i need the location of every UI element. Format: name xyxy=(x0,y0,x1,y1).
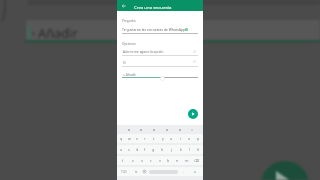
staticText: i xyxy=(180,136,181,141)
button[interactable]: ↵ xyxy=(187,167,203,176)
button[interactable]: o xyxy=(185,134,194,143)
staticText: j xyxy=(171,147,172,152)
button[interactable]: q xyxy=(117,134,125,143)
button[interactable]: Emoji xyxy=(141,167,147,176)
staticText: Sí xyxy=(123,61,126,65)
button[interactable]: h xyxy=(158,145,167,154)
button[interactable]: Space xyxy=(147,167,179,176)
staticText: g xyxy=(152,147,155,152)
button[interactable]: d xyxy=(133,145,141,154)
staticText: d xyxy=(136,147,139,152)
staticText: ñ xyxy=(197,147,200,152)
button[interactable]: Crea una encuesta xyxy=(134,4,172,10)
staticText: ⌫ xyxy=(194,159,200,163)
staticText: c xyxy=(150,158,152,163)
staticText: k xyxy=(180,147,182,152)
staticText: ⇧ xyxy=(121,159,125,163)
button[interactable]: ⇧ xyxy=(117,156,128,165)
button[interactable]: ⇅ xyxy=(131,167,141,176)
button[interactable]: g xyxy=(149,145,158,154)
staticText: h xyxy=(161,147,164,152)
staticText: o xyxy=(188,136,191,141)
button[interactable]: l xyxy=(185,145,194,154)
button[interactable]: Keyboard tool xyxy=(152,128,155,131)
button[interactable]: e xyxy=(133,134,141,143)
button[interactable]: c xyxy=(146,156,155,165)
staticText: Aún no me agarro la opción xyxy=(123,50,164,54)
button[interactable]: Keyboard tool xyxy=(165,128,168,131)
button[interactable]: p xyxy=(194,134,203,143)
button[interactable]: s xyxy=(125,145,133,154)
staticText: z xyxy=(132,158,134,163)
staticText: w xyxy=(128,136,131,141)
staticText: Opciones xyxy=(122,42,136,46)
staticText: . xyxy=(183,169,184,174)
staticText: u xyxy=(170,136,173,141)
button[interactable]: n xyxy=(173,156,182,165)
button[interactable]: Send poll xyxy=(188,109,198,119)
staticText: + Añadir xyxy=(123,72,136,76)
staticText: ↵ xyxy=(194,170,197,174)
staticText: e xyxy=(136,136,139,141)
button[interactable]: ?123 xyxy=(117,167,131,176)
button[interactable]: Keyboard tool xyxy=(139,128,142,131)
button[interactable]: Te gustaron las encuestas de WhatsApp? xyxy=(122,27,187,32)
staticText: a xyxy=(120,147,123,152)
button[interactable]: Keyboard tool xyxy=(127,128,130,131)
button[interactable]: v xyxy=(155,156,164,165)
button[interactable]: u xyxy=(167,134,176,143)
staticText: s xyxy=(128,147,130,152)
button[interactable]: More options xyxy=(190,128,193,131)
button[interactable]: i xyxy=(176,134,185,143)
staticText: v xyxy=(159,158,161,163)
button[interactable]: b xyxy=(164,156,173,165)
button[interactable]: t xyxy=(149,134,158,143)
button[interactable]: Sí xyxy=(123,61,126,65)
button[interactable]: z xyxy=(128,156,137,165)
staticText: x xyxy=(141,158,143,163)
button[interactable]: ⌫ xyxy=(191,156,203,165)
staticText: Pregunta xyxy=(122,19,136,23)
staticText: Añadir xyxy=(38,24,78,41)
button[interactable]: Aún no me agarro la opción xyxy=(123,50,164,54)
staticText: p xyxy=(197,136,200,141)
staticText: n xyxy=(176,158,179,163)
button[interactable]: Keyboard tool xyxy=(178,128,181,131)
staticText: r xyxy=(144,136,146,141)
staticText: t xyxy=(153,136,155,141)
staticText: ?123 xyxy=(121,170,127,174)
button[interactable]: Back xyxy=(120,2,127,9)
button[interactable]: y xyxy=(158,134,167,143)
button[interactable]: m xyxy=(182,156,191,165)
button[interactable]: w xyxy=(125,134,133,143)
staticText: b xyxy=(167,158,170,163)
staticText: Te gustaron las encuestas de WhatsApp? xyxy=(122,27,187,32)
staticText: m xyxy=(185,158,189,163)
staticText: y xyxy=(162,136,164,141)
button[interactable]: f xyxy=(141,145,149,154)
staticText: l xyxy=(189,147,190,152)
button[interactable]: j xyxy=(167,145,176,154)
staticText: + xyxy=(31,27,37,39)
button[interactable]: a xyxy=(117,145,125,154)
button[interactable]: k xyxy=(176,145,185,154)
button[interactable]: r xyxy=(141,134,149,143)
button[interactable]: ñ xyxy=(194,145,203,154)
button[interactable]: + Añadir xyxy=(123,72,136,76)
button[interactable]: x xyxy=(137,156,146,165)
staticText: f xyxy=(144,147,146,152)
staticText: q xyxy=(120,136,123,141)
staticText: Crea una encuesta xyxy=(134,4,172,10)
staticText: ⇅ xyxy=(135,170,138,173)
